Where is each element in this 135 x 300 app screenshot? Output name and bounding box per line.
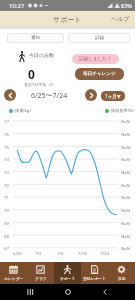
staticText: 7/9 xyxy=(57,250,64,256)
button[interactable]: Next period xyxy=(85,89,97,101)
button[interactable]: ヘルプ xyxy=(106,11,135,27)
staticText: 直近7日平均：0 xyxy=(24,82,53,87)
staticText: 83% xyxy=(121,2,132,9)
button[interactable]: Recents xyxy=(23,285,37,299)
staticText: 7/24 xyxy=(100,250,109,256)
staticText: 69 xyxy=(4,220,9,226)
staticText: 7/16 xyxy=(78,250,87,256)
staticText: サポート xyxy=(60,276,76,281)
staticText: NaN xyxy=(121,156,130,162)
button[interactable]: 1ヶ月▼ xyxy=(101,91,125,101)
button[interactable]: 記録しました！ xyxy=(72,54,119,64)
staticText: グラフ xyxy=(35,276,47,281)
button[interactable]: 通知 xyxy=(7,33,64,43)
staticText: 体脂肪率(%) xyxy=(111,108,134,114)
staticText: 通知 xyxy=(31,35,40,41)
button[interactable]: サポート xyxy=(54,262,81,284)
staticText: 77 xyxy=(4,118,9,124)
staticText: 67 xyxy=(4,245,9,251)
staticText: 70 xyxy=(4,207,9,213)
staticText: NaN xyxy=(121,207,130,213)
staticText: 登録レポート xyxy=(83,276,107,281)
button[interactable]: グラフ xyxy=(27,262,54,284)
staticText: 74 xyxy=(4,156,9,162)
staticText: 73 xyxy=(4,169,9,175)
button[interactable]: Previous period xyxy=(4,89,16,101)
staticText: ヘルプ xyxy=(111,15,130,23)
button[interactable]: 設定 xyxy=(108,262,135,284)
staticText: NaN xyxy=(121,144,130,150)
staticText: 7/2 xyxy=(35,250,42,256)
staticText: 71 xyxy=(4,194,9,200)
button[interactable]: Back xyxy=(98,285,112,299)
staticText: 1ヶ月▼ xyxy=(105,93,121,99)
staticText: 75 xyxy=(4,144,9,150)
staticText: NaN xyxy=(121,245,130,251)
staticText: 記録しました！ xyxy=(79,56,112,62)
button[interactable]: 毎日チャレンジ xyxy=(75,68,124,80)
staticText: 6/25 xyxy=(13,250,22,256)
staticText: カレンダー xyxy=(4,276,24,281)
button[interactable]: 登録レポート xyxy=(81,262,108,284)
staticText: 今日の歩数 xyxy=(29,52,55,58)
staticText: 毎日チャレンジ xyxy=(83,71,116,77)
staticText: NaN xyxy=(121,118,130,124)
staticText: サポート xyxy=(53,15,82,24)
staticText: NaN xyxy=(121,169,130,175)
staticText: NaN xyxy=(121,182,130,188)
staticText: NaN xyxy=(121,233,130,239)
staticText: 6/25〜7/24 xyxy=(31,91,68,101)
staticText: NaN xyxy=(121,131,130,137)
staticText: 体重(kg) xyxy=(15,108,31,114)
staticText: NaN xyxy=(121,220,130,226)
button[interactable]: 記録 xyxy=(68,33,130,43)
staticText: 68 xyxy=(4,233,9,239)
button[interactable]: Home xyxy=(61,285,75,299)
staticText: 0 xyxy=(28,66,35,82)
button[interactable]: カレンダー xyxy=(0,262,27,284)
staticText: 72 xyxy=(4,182,9,188)
staticText: 記録 xyxy=(95,35,104,41)
staticText: 設定 xyxy=(118,276,126,281)
staticText: 76 xyxy=(4,131,9,137)
staticText: 10:27 xyxy=(9,2,25,10)
staticText: NaN xyxy=(121,194,130,200)
